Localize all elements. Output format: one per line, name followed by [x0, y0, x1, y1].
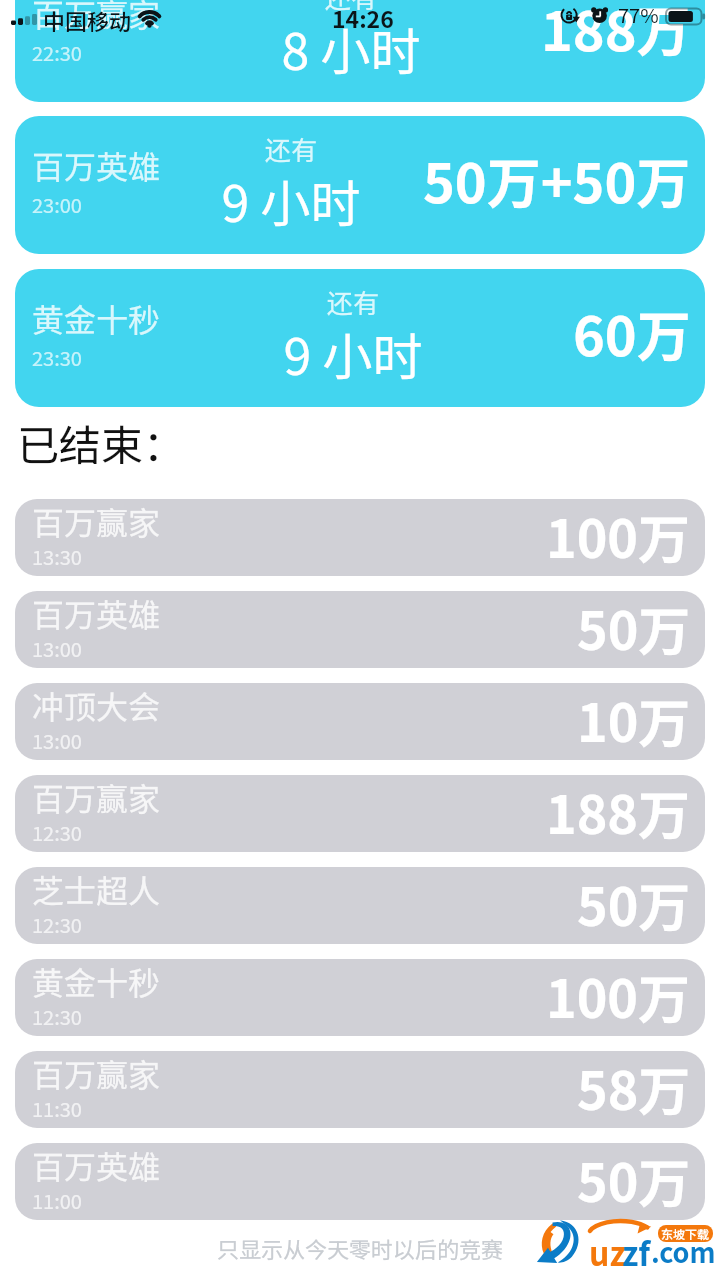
staticText: .com — [651, 1232, 716, 1271]
staticText: 百万赢家 — [32, 1051, 161, 1096]
staticText: 百万英雄 — [32, 591, 161, 636]
other: Alarm — [588, 4, 611, 27]
button[interactable]: 百万英雄 — [15, 591, 705, 668]
staticText: 冲顶大会 — [32, 683, 161, 728]
button[interactable]: 百万英雄 — [15, 1143, 705, 1220]
staticText: 11:30 — [32, 1094, 82, 1123]
staticText: 12:30 — [32, 910, 82, 939]
staticText: 9 小时 — [181, 164, 401, 236]
button[interactable]: 芝士超人 — [15, 867, 705, 944]
button[interactable]: 百万赢家 — [15, 0, 705, 102]
staticText: 百万赢家 — [32, 0, 161, 36]
staticText: 10万 — [577, 683, 691, 757]
button[interactable]: 百万赢家 — [15, 499, 705, 576]
staticText: 188万 — [541, 0, 691, 66]
staticText: 23:30 — [32, 343, 82, 372]
staticText: 13:00 — [32, 634, 82, 663]
staticText: 百万英雄 — [32, 1143, 161, 1188]
staticText: 22:30 — [32, 38, 82, 67]
staticText: 芝士超人 — [32, 867, 161, 912]
staticText: 100万 — [546, 499, 691, 573]
staticText: 13:00 — [32, 726, 82, 755]
staticText: 8 小时 — [241, 12, 461, 84]
staticText: 黄金十秒 — [32, 959, 161, 1004]
other: Cellular signal — [11, 14, 37, 25]
staticText: uz — [589, 1229, 626, 1275]
staticText: 50万 — [577, 867, 691, 941]
staticText: 77% — [618, 0, 659, 29]
button[interactable]: 百万英雄 — [15, 116, 705, 254]
other: Battery 77 percent — [665, 8, 707, 25]
staticText: 还有 — [241, 0, 461, 16]
button[interactable]: 黄金十秒 — [15, 269, 705, 407]
staticText: 9 小时 — [243, 317, 463, 389]
staticText: 58万 — [577, 1051, 691, 1125]
button[interactable]: 冲顶大会 — [15, 683, 705, 760]
button[interactable]: 百万赢家 — [15, 775, 705, 852]
staticText: 60万 — [573, 293, 691, 371]
other: Rotation lock — [558, 4, 582, 27]
button[interactable]: 百万赢家 — [15, 1051, 705, 1128]
staticText: 23:00 — [32, 190, 82, 219]
staticText: 50万 — [577, 591, 691, 665]
staticText: 百万英雄 — [32, 142, 161, 188]
staticText: 还有 — [181, 130, 401, 168]
staticText: 东坡下载 — [661, 1225, 710, 1242]
staticText: 50万+50万 — [423, 140, 691, 218]
staticText: 50万 — [577, 1143, 691, 1217]
staticText: 12:30 — [32, 818, 82, 847]
staticText: 13:30 — [32, 542, 82, 571]
staticText: 11:00 — [32, 1186, 82, 1215]
staticText: 百万赢家 — [32, 499, 161, 544]
staticText: zf — [622, 1229, 651, 1275]
staticText: 已结束： — [17, 412, 186, 473]
staticText: 还有 — [243, 283, 463, 321]
staticText: 12:30 — [32, 1002, 82, 1031]
staticText: 百万赢家 — [32, 775, 161, 820]
staticText: 100万 — [546, 959, 691, 1033]
staticText: 黄金十秒 — [32, 295, 161, 341]
staticText: 中国移动 — [43, 4, 132, 36]
button[interactable]: 黄金十秒 — [15, 959, 705, 1036]
staticText: 14:26 — [332, 1, 394, 34]
staticText: 只显示从今天零时以后的竞赛 — [217, 1232, 504, 1264]
other: Wi-Fi — [135, 11, 164, 27]
staticText: 188万 — [546, 775, 691, 849]
